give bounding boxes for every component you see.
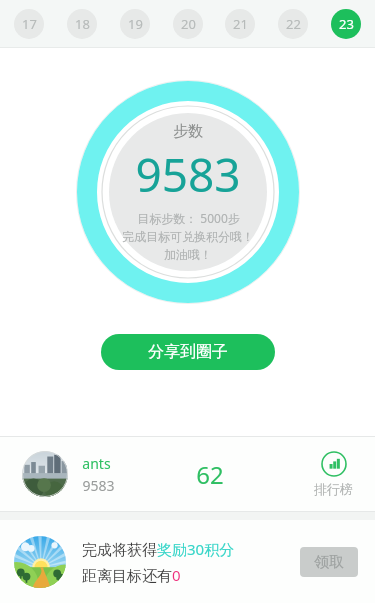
button[interactable]: 20 bbox=[173, 9, 203, 39]
button[interactable]: 19 bbox=[120, 9, 150, 39]
staticText: 分享到圈子 bbox=[148, 342, 228, 362]
staticText: 18 bbox=[75, 15, 90, 33]
staticText: 距离目标还有0 bbox=[82, 565, 181, 585]
button[interactable]: 领取 bbox=[300, 547, 358, 577]
button[interactable]: 17 bbox=[14, 9, 44, 39]
staticText: 目标步数： 5000步 bbox=[137, 210, 240, 226]
staticText: 21 bbox=[233, 15, 248, 33]
staticText: 19 bbox=[128, 15, 143, 33]
staticText: 领取 bbox=[314, 553, 344, 572]
staticText: 17 bbox=[22, 15, 37, 33]
staticText: 完成将获得奖励30积分 bbox=[82, 539, 235, 559]
button[interactable]: 23 bbox=[331, 9, 361, 39]
button[interactable]: 18 bbox=[67, 9, 97, 39]
button[interactable]: 分享到圈子 bbox=[101, 334, 275, 370]
staticText: 22 bbox=[286, 15, 301, 33]
staticText: 完成目标可兑换积分哦！ bbox=[122, 229, 254, 244]
button[interactable]: 21 bbox=[225, 9, 255, 39]
staticText: 9583 bbox=[135, 143, 241, 206]
staticText: 23 bbox=[339, 15, 354, 33]
staticText: 62 bbox=[196, 458, 224, 491]
button[interactable]: 22 bbox=[278, 9, 308, 39]
staticText: 步数 bbox=[173, 122, 203, 141]
button[interactable]: ants bbox=[0, 437, 375, 511]
other: 排行榜 bbox=[321, 451, 347, 477]
staticText: ants bbox=[82, 454, 111, 473]
staticText: 9583 bbox=[82, 476, 115, 495]
staticText: 20 bbox=[181, 15, 196, 33]
staticText: 排行榜 bbox=[314, 481, 353, 497]
staticText: 加油哦！ bbox=[164, 247, 212, 262]
